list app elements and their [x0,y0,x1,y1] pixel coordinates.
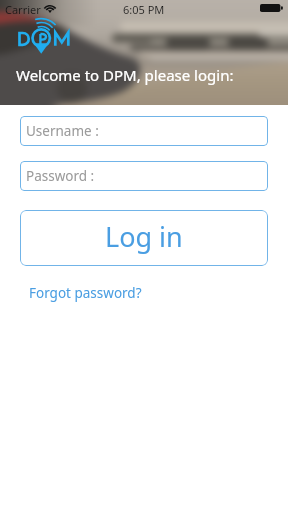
staticText: Password : [26,167,95,185]
staticText: 6:05 PM [123,2,165,17]
staticText: Log in [105,218,183,255]
staticText: Carrier [5,2,41,17]
button[interactable]: Password : [20,161,268,191]
other: Battery full [260,4,283,12]
staticText: Welcome to DPM, please login: [16,65,234,85]
button[interactable]: Forgot password? [29,284,142,302]
button[interactable]: Log in [20,210,268,266]
staticText: Forgot password? [29,284,142,302]
other: Wi-Fi [45,4,55,13]
button[interactable]: Username : [20,116,268,146]
staticText: Username : [26,122,99,140]
